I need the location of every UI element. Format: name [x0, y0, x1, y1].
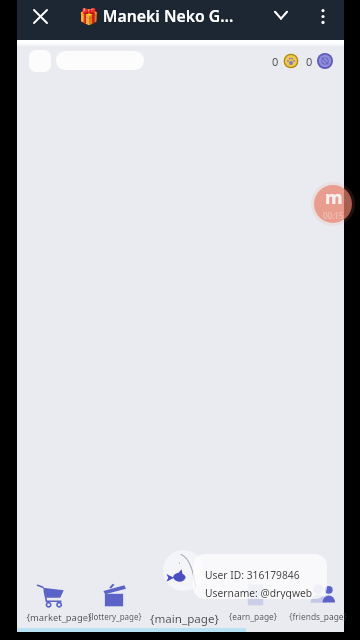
button[interactable]: Timer [311, 182, 355, 226]
staticText: {earn_page} [229, 611, 277, 622]
button[interactable]: Earn [227, 575, 293, 627]
staticText: {friends_page} [289, 611, 347, 622]
button[interactable]: Market [24, 575, 90, 627]
staticText: Username: @drygweb [205, 586, 313, 599]
button[interactable]: 0 [272, 53, 299, 69]
staticText: 00:15 [323, 210, 344, 221]
button[interactable]: More options [308, 1, 338, 31]
staticText: User ID: 316179846 [205, 568, 300, 582]
staticText: 0 [306, 54, 313, 69]
button[interactable]: Main [148, 575, 214, 627]
button[interactable]: 0 [306, 53, 333, 69]
button[interactable]: Main page [163, 550, 204, 591]
button[interactable]: Friends [287, 575, 353, 627]
staticText: 🎁 Maneki Neko G… [79, 5, 234, 27]
staticText: 0 [272, 54, 279, 69]
staticText: m [325, 185, 343, 210]
button[interactable]: Collapse [266, 0, 296, 30]
staticText: {market_page} [26, 611, 92, 624]
staticText: {lottery_page} [88, 611, 142, 622]
button[interactable]: Close [24, 0, 56, 32]
staticText: {main_page} [150, 611, 219, 627]
button[interactable]: Lottery [86, 575, 152, 627]
button[interactable]: User ID: 316179846 [193, 554, 327, 599]
